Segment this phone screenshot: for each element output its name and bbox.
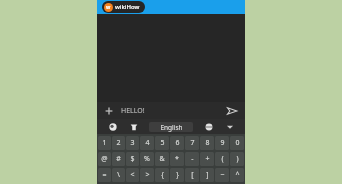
staticText: > bbox=[145, 170, 150, 180]
button[interactable]: [ bbox=[185, 168, 199, 182]
staticText: { bbox=[161, 170, 164, 180]
button[interactable]: 0 bbox=[230, 136, 244, 150]
staticText: ) bbox=[236, 154, 239, 164]
staticText: $ bbox=[130, 154, 135, 164]
button[interactable]: 5 bbox=[155, 136, 169, 150]
staticText: } bbox=[176, 170, 179, 180]
button[interactable]: 7 bbox=[185, 136, 199, 150]
staticText: 4 bbox=[145, 138, 150, 148]
button[interactable]: } bbox=[170, 168, 184, 182]
button[interactable]: 8 bbox=[200, 136, 214, 150]
staticText: 3 bbox=[130, 138, 135, 148]
staticText: 8 bbox=[205, 138, 210, 148]
staticText: * bbox=[175, 154, 179, 164]
staticText: 0 bbox=[235, 138, 240, 148]
button[interactable]: - bbox=[185, 152, 199, 166]
button[interactable]: Hide keyboard bbox=[223, 120, 236, 133]
staticText: 9 bbox=[220, 138, 225, 148]
button[interactable]: 6 bbox=[170, 136, 184, 150]
staticText: 7 bbox=[190, 138, 195, 148]
staticText: # bbox=[116, 154, 121, 164]
button[interactable]: Send bbox=[225, 104, 239, 118]
button[interactable]: Language bbox=[202, 120, 215, 133]
button[interactable]: English bbox=[149, 122, 193, 132]
button[interactable]: < bbox=[126, 168, 139, 182]
button[interactable]: ~ bbox=[215, 168, 229, 182]
button[interactable]: ] bbox=[200, 168, 214, 182]
button[interactable]: 2 bbox=[112, 136, 125, 150]
staticText: - bbox=[191, 154, 194, 164]
button[interactable]: Add attachment bbox=[103, 105, 115, 117]
staticText: w bbox=[106, 4, 111, 11]
staticText: 5 bbox=[160, 138, 165, 148]
staticText: ( bbox=[221, 154, 224, 164]
button[interactable]: = bbox=[98, 168, 111, 182]
staticText: % bbox=[144, 154, 150, 164]
staticText: 6 bbox=[175, 138, 180, 148]
button[interactable]: 1 bbox=[98, 136, 111, 150]
staticText: < bbox=[130, 170, 135, 180]
button[interactable]: @ bbox=[98, 152, 111, 166]
staticText: & bbox=[159, 154, 165, 164]
staticText: ~ bbox=[220, 170, 225, 180]
staticText: @ bbox=[101, 154, 108, 164]
staticText: + bbox=[205, 154, 210, 164]
button[interactable]: ^ bbox=[230, 168, 244, 182]
button[interactable]: # bbox=[112, 152, 125, 166]
staticText: HELLO! bbox=[121, 106, 225, 116]
button[interactable]: 3 bbox=[126, 136, 139, 150]
staticText: wikiHow bbox=[115, 3, 140, 11]
button[interactable]: w bbox=[102, 1, 145, 13]
staticText: 2 bbox=[116, 138, 121, 148]
button[interactable]: 4 bbox=[140, 136, 154, 150]
button[interactable]: ( bbox=[215, 152, 229, 166]
button[interactable]: > bbox=[140, 168, 154, 182]
staticText: [ bbox=[191, 170, 194, 180]
button[interactable]: 9 bbox=[215, 136, 229, 150]
button[interactable]: Themes bbox=[127, 120, 140, 133]
staticText: = bbox=[102, 170, 107, 180]
staticText: 1 bbox=[102, 138, 107, 148]
staticText: \ bbox=[117, 170, 120, 180]
button[interactable]: { bbox=[155, 168, 169, 182]
button[interactable]: & bbox=[155, 152, 169, 166]
button[interactable]: % bbox=[140, 152, 154, 166]
staticText: ] bbox=[206, 170, 209, 180]
button[interactable]: $ bbox=[126, 152, 139, 166]
staticText: ^ bbox=[235, 170, 240, 180]
button[interactable]: Stickers bbox=[106, 120, 119, 133]
button[interactable]: * bbox=[170, 152, 184, 166]
button[interactable]: \ bbox=[112, 168, 125, 182]
button[interactable]: ) bbox=[230, 152, 244, 166]
button[interactable]: + bbox=[200, 152, 214, 166]
staticText: English bbox=[160, 123, 183, 132]
